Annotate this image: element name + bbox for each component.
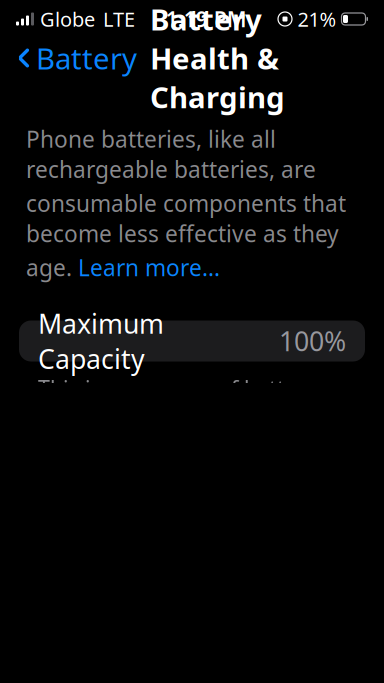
- button[interactable]: Battery: [8, 32, 137, 83]
- button[interactable]: Learn more...: [78, 252, 220, 282]
- staticText: This is a measure of battery capacity re…: [38, 373, 339, 515]
- staticText: LTE: [103, 6, 135, 32]
- staticText: Battery: [36, 38, 137, 77]
- staticText: consumable components that become less e…: [26, 188, 346, 248]
- staticText: Maximum Capacity: [38, 306, 164, 376]
- staticText: 1:19 PM: [166, 5, 247, 33]
- staticText: Phone batteries, like all rechargeable b…: [26, 124, 316, 184]
- staticText: Battery Health & Charging: [150, 0, 285, 116]
- staticText: Globe: [40, 6, 95, 32]
- staticText: age.: [26, 252, 78, 282]
- staticText: 100%: [279, 323, 346, 359]
- button[interactable]: Maximum Capacity: [19, 320, 365, 361]
- staticText: 21%: [297, 6, 336, 32]
- staticText: Learn more...: [78, 252, 220, 282]
